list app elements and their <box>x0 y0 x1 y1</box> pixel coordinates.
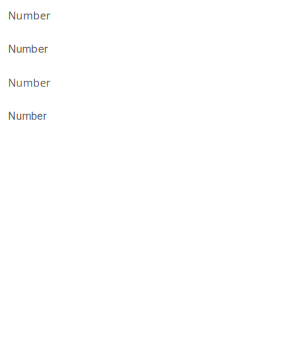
staticText: Number <box>8 75 50 90</box>
staticText: Number <box>8 42 48 55</box>
staticText: Number <box>8 8 50 22</box>
staticText: Number <box>8 110 47 122</box>
